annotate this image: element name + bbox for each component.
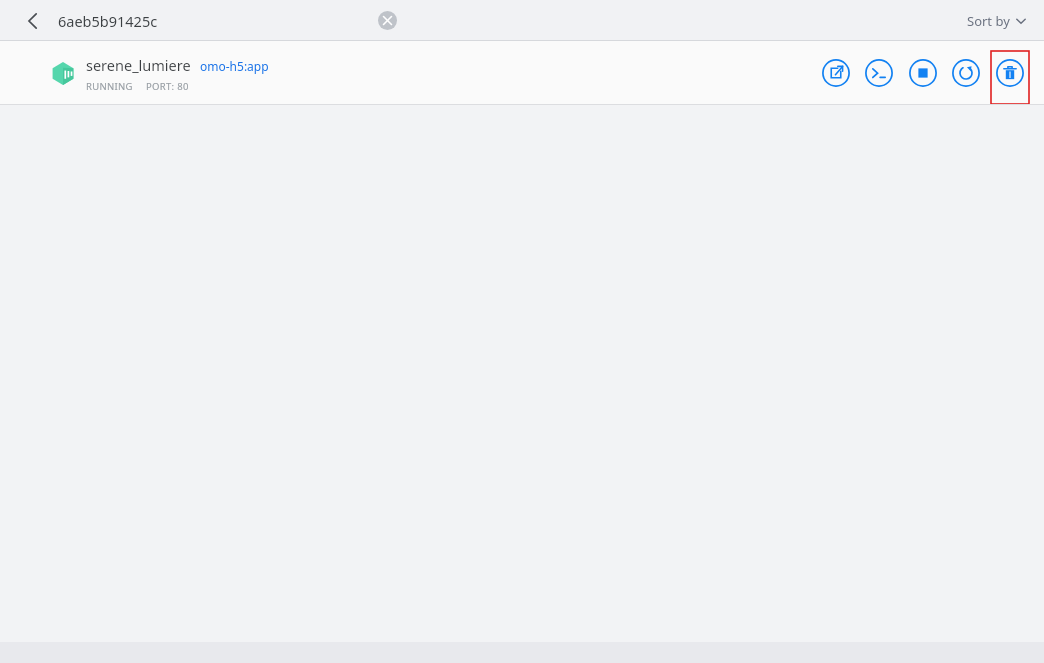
staticText: 6aeb5b91425c bbox=[58, 11, 158, 31]
staticText: PORT: 80 bbox=[146, 80, 189, 93]
button[interactable]: Open terminal bbox=[865, 59, 893, 87]
button[interactable]: Clear bbox=[374, 7, 400, 33]
button[interactable]: Restart bbox=[952, 59, 980, 87]
staticText: Sort by bbox=[967, 12, 1010, 30]
button[interactable] bbox=[0, 41, 1044, 105]
staticText: omo-h5:app bbox=[200, 58, 269, 74]
button[interactable]: Open in browser bbox=[822, 59, 850, 87]
staticText: serene_lumiere bbox=[86, 55, 191, 75]
button[interactable]: Back bbox=[16, 4, 49, 37]
button[interactable]: Stop bbox=[909, 59, 937, 87]
button[interactable]: Delete bbox=[996, 59, 1024, 87]
staticText: RUNNING bbox=[86, 80, 133, 93]
button[interactable]: Sort by bbox=[963, 8, 1030, 34]
